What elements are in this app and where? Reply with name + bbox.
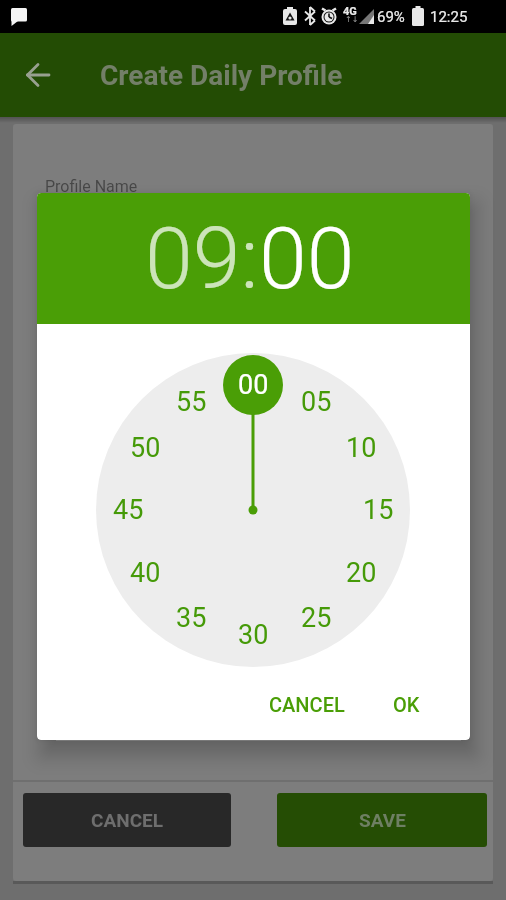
staticText: 20 — [346, 557, 377, 589]
button[interactable]: 05 — [286, 380, 346, 424]
staticText: 45 — [113, 494, 144, 526]
staticText: 25 — [301, 602, 332, 634]
staticText: OK — [393, 693, 420, 716]
staticText: Create Daily Profile — [100, 59, 343, 92]
button[interactable]: SAVE — [277, 793, 487, 847]
button[interactable]: 35 — [161, 596, 221, 640]
staticText: 15 — [363, 494, 394, 526]
staticText: CANCEL — [269, 693, 345, 716]
button[interactable]: 00 — [223, 363, 283, 407]
staticText: CANCEL — [91, 809, 164, 831]
staticText: ↑↓ — [345, 15, 359, 24]
staticText: 50 — [130, 432, 161, 464]
staticText: 00 — [238, 369, 269, 401]
button[interactable]: CANCEL — [237, 680, 377, 728]
button[interactable]: 55 — [161, 380, 221, 424]
staticText: 40 — [130, 557, 161, 589]
button[interactable]: 10 — [331, 426, 391, 470]
button[interactable]: 20 — [331, 551, 391, 595]
staticText: 10 — [346, 432, 377, 464]
button[interactable]: 40 — [115, 551, 175, 595]
button[interactable]: CANCEL — [23, 793, 231, 847]
button[interactable]: 50 — [115, 426, 175, 470]
button[interactable]: 30 — [223, 613, 283, 657]
staticText: 55 — [176, 386, 207, 418]
button[interactable]: 45 — [98, 488, 158, 532]
staticText: 30 — [238, 619, 269, 651]
button[interactable]: OK — [376, 680, 436, 728]
button[interactable]: 25 — [286, 596, 346, 640]
staticText: 35 — [176, 602, 207, 634]
button[interactable] — [14, 51, 62, 99]
staticText: Profile Name — [45, 177, 138, 196]
staticText: SAVE — [359, 809, 406, 831]
staticText: 69% — [377, 8, 405, 26]
staticText: 05 — [301, 386, 332, 418]
staticText: 00 — [259, 208, 355, 309]
staticText: 09: — [145, 208, 259, 309]
button[interactable]: 15 — [348, 488, 408, 532]
staticText: 4G — [343, 5, 357, 18]
staticText: 12:25 — [430, 8, 468, 26]
